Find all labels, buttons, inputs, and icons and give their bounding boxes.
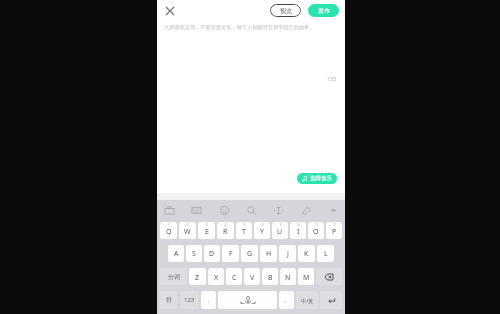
staticText: V bbox=[250, 273, 255, 283]
button[interactable]: L bbox=[317, 245, 334, 262]
button[interactable]: S bbox=[186, 245, 202, 262]
button[interactable]: Search bbox=[243, 202, 259, 218]
button[interactable]: K bbox=[298, 245, 315, 262]
button[interactable]: Keyboard layout bbox=[188, 202, 204, 218]
staticText: W bbox=[184, 227, 191, 237]
staticText: F bbox=[229, 249, 233, 259]
button[interactable]: 6 bbox=[254, 222, 270, 239]
staticText: C bbox=[232, 273, 237, 283]
staticText: 155 bbox=[327, 75, 337, 82]
staticText: · bbox=[252, 268, 253, 273]
button[interactable]: Toolbox bbox=[161, 202, 177, 218]
button[interactable]: 。 bbox=[279, 291, 294, 309]
staticText: N bbox=[285, 273, 291, 283]
button[interactable]: Close bbox=[162, 3, 178, 19]
staticText: ， bbox=[206, 297, 211, 303]
button[interactable]: 3 bbox=[198, 222, 215, 239]
staticText: 9 bbox=[315, 222, 318, 227]
staticText: L bbox=[324, 249, 328, 259]
staticText: 1 bbox=[167, 222, 170, 227]
button[interactable]: · bbox=[208, 268, 224, 285]
staticText: R bbox=[223, 227, 228, 237]
staticText: · bbox=[216, 268, 217, 273]
button[interactable]: · bbox=[226, 268, 242, 285]
button[interactable]: 123 bbox=[180, 291, 199, 309]
button[interactable]: 7 bbox=[272, 222, 288, 239]
button[interactable]: 预览 bbox=[270, 4, 301, 17]
button[interactable]: D bbox=[204, 245, 220, 262]
staticText: D bbox=[209, 249, 215, 259]
staticText: S bbox=[192, 249, 196, 259]
button[interactable]: Backspace bbox=[316, 268, 342, 285]
staticText: Z bbox=[195, 273, 200, 283]
button[interactable]: 0 bbox=[326, 222, 342, 239]
staticText: 123 bbox=[184, 296, 195, 304]
button[interactable]: J bbox=[279, 245, 296, 262]
staticText: Y bbox=[260, 227, 264, 237]
staticText: E bbox=[205, 227, 209, 237]
staticText: 分词 bbox=[168, 273, 180, 281]
staticText: 3 bbox=[205, 222, 208, 227]
staticText: 预览 bbox=[280, 7, 292, 15]
staticText: J bbox=[287, 249, 289, 259]
staticText: 选择音乐 bbox=[310, 175, 332, 182]
button[interactable]: · bbox=[244, 268, 260, 285]
button[interactable]: H bbox=[260, 245, 277, 262]
staticText: · bbox=[306, 268, 307, 273]
staticText: 5 bbox=[243, 222, 246, 227]
staticText: · bbox=[234, 268, 235, 273]
staticText: 发布 bbox=[318, 7, 330, 15]
staticText: T bbox=[242, 227, 246, 237]
staticText: 6 bbox=[261, 222, 264, 227]
button[interactable]: 4 bbox=[217, 222, 234, 239]
button[interactable]: · bbox=[280, 268, 296, 285]
button[interactable]: Enter bbox=[320, 291, 342, 309]
staticText: Q bbox=[166, 227, 172, 237]
staticText: 8 bbox=[297, 222, 300, 227]
staticText: 4 bbox=[224, 222, 227, 227]
button[interactable]: · bbox=[262, 268, 278, 285]
button[interactable]: · bbox=[298, 268, 314, 285]
staticText: U bbox=[277, 227, 283, 237]
button[interactable]: 1 bbox=[160, 222, 177, 239]
staticText: X bbox=[214, 273, 219, 283]
button[interactable]: 分词 bbox=[160, 268, 187, 285]
staticText: H bbox=[266, 249, 272, 259]
button[interactable]: F bbox=[222, 245, 239, 262]
button[interactable]: Cursor bbox=[270, 202, 286, 218]
staticText: 符 bbox=[166, 296, 172, 304]
button[interactable]: Clear bbox=[298, 202, 314, 218]
button[interactable]: 9 bbox=[308, 222, 324, 239]
staticText: I bbox=[297, 227, 300, 237]
staticText: 2 bbox=[186, 222, 189, 227]
button[interactable]: 选择音乐 bbox=[297, 173, 337, 184]
staticText: K bbox=[304, 249, 309, 259]
staticText: 0 bbox=[333, 222, 336, 227]
staticText: 7 bbox=[279, 222, 282, 227]
staticText: A bbox=[174, 249, 179, 259]
staticText: · bbox=[288, 268, 289, 273]
button[interactable]: 2 bbox=[179, 222, 196, 239]
staticText: · bbox=[197, 268, 198, 273]
button[interactable]: Space / voice input bbox=[218, 291, 277, 309]
staticText: 。 bbox=[284, 297, 289, 303]
button[interactable]: 发布 bbox=[308, 4, 339, 17]
button[interactable]: G bbox=[241, 245, 258, 262]
button[interactable]: Collapse bbox=[325, 202, 341, 218]
staticText: B bbox=[268, 273, 273, 283]
button[interactable]: 中/英 bbox=[296, 291, 318, 309]
staticText: 中/英 bbox=[301, 297, 314, 304]
staticText: G bbox=[247, 249, 253, 259]
button[interactable]: 8 bbox=[290, 222, 306, 239]
button[interactable]: ， bbox=[201, 291, 216, 309]
staticText: M bbox=[303, 273, 310, 283]
button[interactable]: · bbox=[189, 268, 206, 285]
button[interactable]: A bbox=[168, 245, 184, 262]
button[interactable]: 符 bbox=[160, 291, 178, 309]
button[interactable]: 5 bbox=[236, 222, 252, 239]
staticText: · bbox=[270, 268, 271, 273]
staticText: 大胆落笔去写，不要在意文笔，每个人都能写五百字自己的故事。 bbox=[164, 24, 315, 31]
staticText: O bbox=[313, 227, 319, 237]
staticText: P bbox=[332, 227, 337, 237]
button[interactable]: Emoji bbox=[216, 202, 232, 218]
